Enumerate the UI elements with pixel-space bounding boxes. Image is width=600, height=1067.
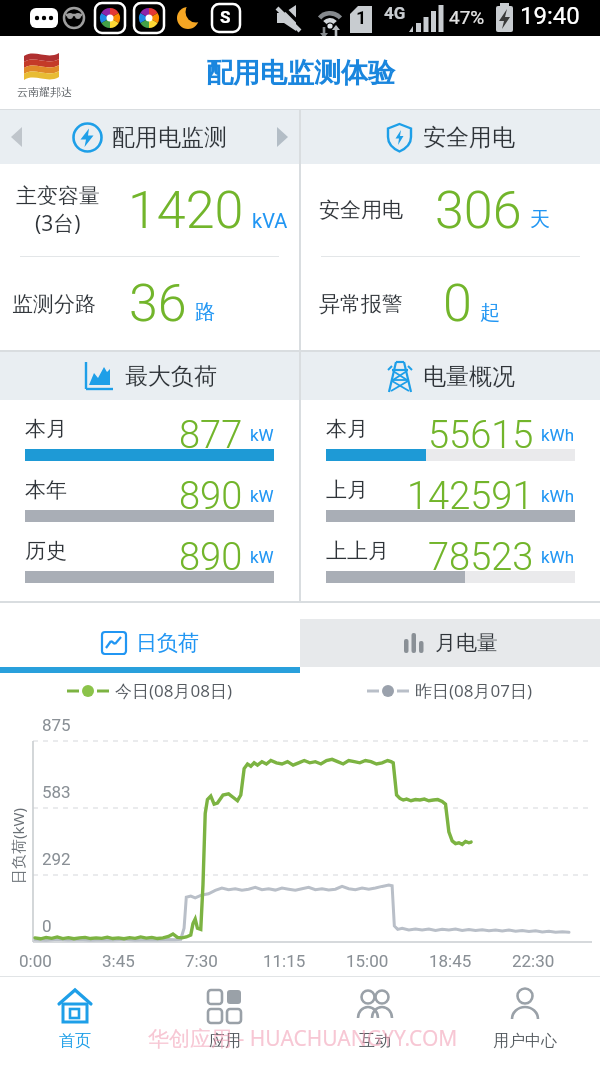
staticText: 0:00: [19, 951, 52, 971]
staticText: 142591: [407, 474, 534, 516]
staticText: kW: [250, 486, 274, 506]
staticText: 主变容量: [16, 183, 100, 209]
staticText: 0: [42, 916, 52, 936]
staticText: 起: [480, 300, 500, 325]
button[interactable]: 月电量: [300, 619, 600, 673]
staticText: kWh: [541, 547, 575, 567]
staticText: 4G: [384, 3, 406, 23]
staticText: (3台): [35, 209, 81, 238]
staticText: 36: [129, 273, 187, 334]
staticText: 应用: [209, 1031, 241, 1051]
staticText: S: [220, 7, 231, 27]
staticText: kWh: [541, 425, 575, 445]
staticText: 本年: [25, 477, 67, 503]
button[interactable]: 用户中心: [450, 977, 600, 1066]
staticText: 19:40: [520, 2, 580, 30]
button[interactable]: 最大负荷: [0, 352, 299, 400]
staticText: 1: [356, 7, 367, 28]
staticText: 最大负荷: [125, 362, 217, 391]
staticText: 天: [530, 207, 550, 232]
staticText: 日负荷(kW): [8, 808, 28, 884]
staticText: 昨日(08月07日): [415, 679, 533, 702]
staticText: 上月: [326, 477, 368, 503]
staticText: 月电量: [435, 630, 498, 656]
staticText: 今日(08月08日): [115, 679, 233, 702]
staticText: kVA: [252, 209, 288, 232]
staticText: 华创应用 - HUACHUANGYY.COM: [148, 1024, 458, 1053]
staticText: 1420: [128, 180, 244, 241]
staticText: 583: [42, 782, 71, 802]
staticText: 15:00: [346, 951, 389, 971]
staticText: 监测分路: [12, 291, 96, 317]
staticText: 互动: [359, 1031, 391, 1051]
button[interactable]: 安全用电: [301, 110, 600, 164]
staticText: 18:45: [429, 951, 472, 971]
staticText: 0: [443, 273, 472, 334]
staticText: 路: [195, 300, 215, 325]
staticText: 306: [435, 180, 522, 241]
button[interactable]: 首页: [0, 977, 150, 1066]
staticText: 配用电监测: [112, 123, 227, 152]
staticText: 本月: [25, 416, 67, 442]
staticText: 配用电监测体验: [206, 56, 395, 90]
button[interactable]: 应用: [150, 977, 300, 1066]
staticText: 55615: [428, 413, 534, 455]
staticText: 日负荷: [136, 630, 199, 656]
button[interactable]: 互动: [300, 977, 450, 1066]
staticText: 电量概况: [423, 362, 515, 391]
staticText: 安全用电: [423, 123, 515, 152]
staticText: 875: [42, 715, 71, 735]
button[interactable]: 日负荷: [0, 619, 300, 673]
staticText: 首页: [59, 1031, 91, 1051]
staticText: 7:30: [185, 951, 218, 971]
staticText: 890: [179, 535, 243, 577]
staticText: 上上月: [326, 538, 389, 564]
staticText: 本月: [326, 416, 368, 442]
staticText: 22:30: [512, 951, 555, 971]
staticText: 3:45: [102, 951, 135, 971]
staticText: 292: [42, 849, 71, 869]
staticText: kW: [250, 425, 274, 445]
staticText: 11:15: [263, 951, 306, 971]
staticText: 云南耀邦达: [17, 85, 72, 99]
staticText: 安全用电: [319, 197, 403, 223]
staticText: 47%: [449, 6, 485, 28]
staticText: 用户中心: [493, 1031, 557, 1051]
button[interactable]: 电量概况: [301, 352, 600, 400]
button[interactable]: 配用电监测: [0, 110, 299, 164]
staticText: kWh: [541, 486, 575, 506]
staticText: 877: [179, 413, 243, 455]
staticText: 78523: [428, 535, 534, 577]
staticText: 异常报警: [319, 291, 403, 317]
staticText: 历史: [25, 538, 67, 564]
staticText: kW: [250, 547, 274, 567]
staticText: 890: [179, 474, 243, 516]
